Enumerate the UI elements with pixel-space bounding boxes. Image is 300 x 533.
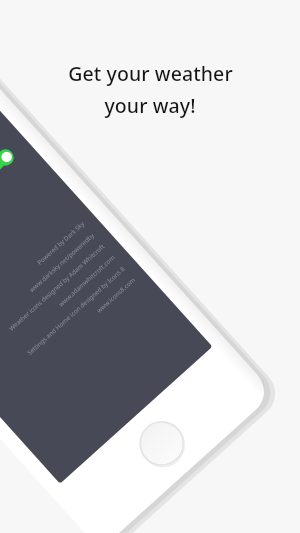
other: Weather app preview on phone	[0, 0, 300, 533]
staticText: Get your weather	[68, 60, 233, 87]
staticText: your way!	[104, 92, 196, 119]
button[interactable]: Get your weather	[24, 60, 276, 119]
